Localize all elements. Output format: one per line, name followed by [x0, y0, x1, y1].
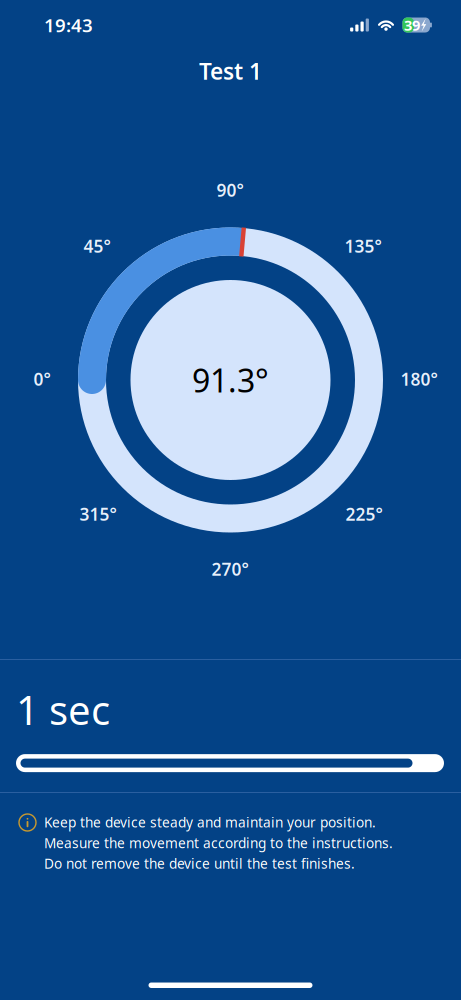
staticText: 315° — [79, 502, 116, 525]
staticText: 90° — [216, 178, 243, 201]
staticText: 225° — [345, 502, 382, 525]
staticText: 39 — [404, 15, 420, 35]
staticText: 135° — [344, 234, 381, 257]
staticText: Test 1 — [199, 56, 262, 86]
staticText: 19:43 — [44, 13, 93, 37]
staticText: Measure the movement according to the in… — [44, 834, 393, 852]
staticText: 0° — [33, 367, 50, 390]
staticText: Do not remove the device until the test … — [44, 854, 355, 873]
staticText: 45° — [83, 234, 110, 257]
staticText: 1 sec — [16, 683, 110, 736]
staticText: 180° — [400, 367, 437, 390]
staticText: Keep the device steady and maintain your… — [44, 813, 376, 832]
staticText: 270° — [211, 557, 248, 580]
staticText: 91.3° — [192, 359, 269, 401]
